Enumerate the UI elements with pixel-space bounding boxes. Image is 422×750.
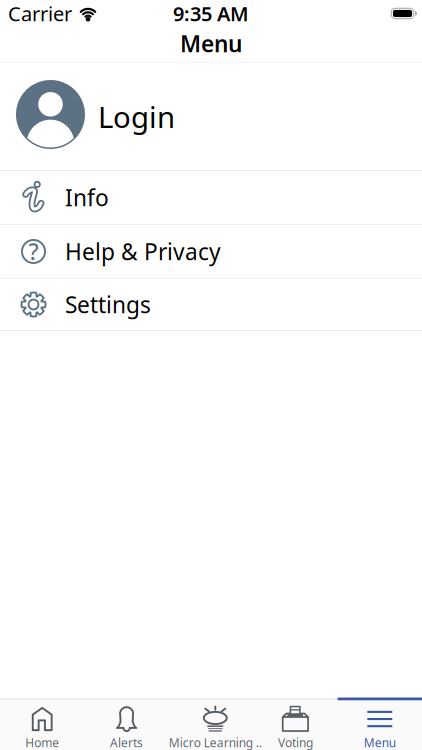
button[interactable]: Menu <box>338 700 422 750</box>
button[interactable]: Home <box>0 700 84 750</box>
staticText: ? <box>28 236 38 266</box>
staticText: Micro Learning .. <box>169 734 262 750</box>
staticText: Home <box>25 734 59 750</box>
staticText: Login <box>98 97 175 136</box>
staticText: Menu <box>180 28 242 58</box>
button[interactable]: Info <box>0 171 422 224</box>
staticText: Info <box>65 182 109 212</box>
staticText: 9:35 AM <box>173 0 249 27</box>
button[interactable]: Voting <box>253 700 338 750</box>
staticText: Voting <box>278 734 313 750</box>
button[interactable]: Micro Learning .. <box>169 700 253 750</box>
button[interactable]: Login <box>0 63 422 170</box>
button[interactable]: ? <box>0 225 422 278</box>
staticText: Alerts <box>110 734 143 750</box>
staticText: Settings <box>65 289 151 319</box>
button[interactable]: Settings <box>0 279 422 330</box>
button[interactable]: Alerts <box>84 700 169 750</box>
staticText: Menu <box>364 734 396 750</box>
staticText: Help & Privacy <box>65 236 221 266</box>
staticText: Carrier <box>8 0 72 27</box>
